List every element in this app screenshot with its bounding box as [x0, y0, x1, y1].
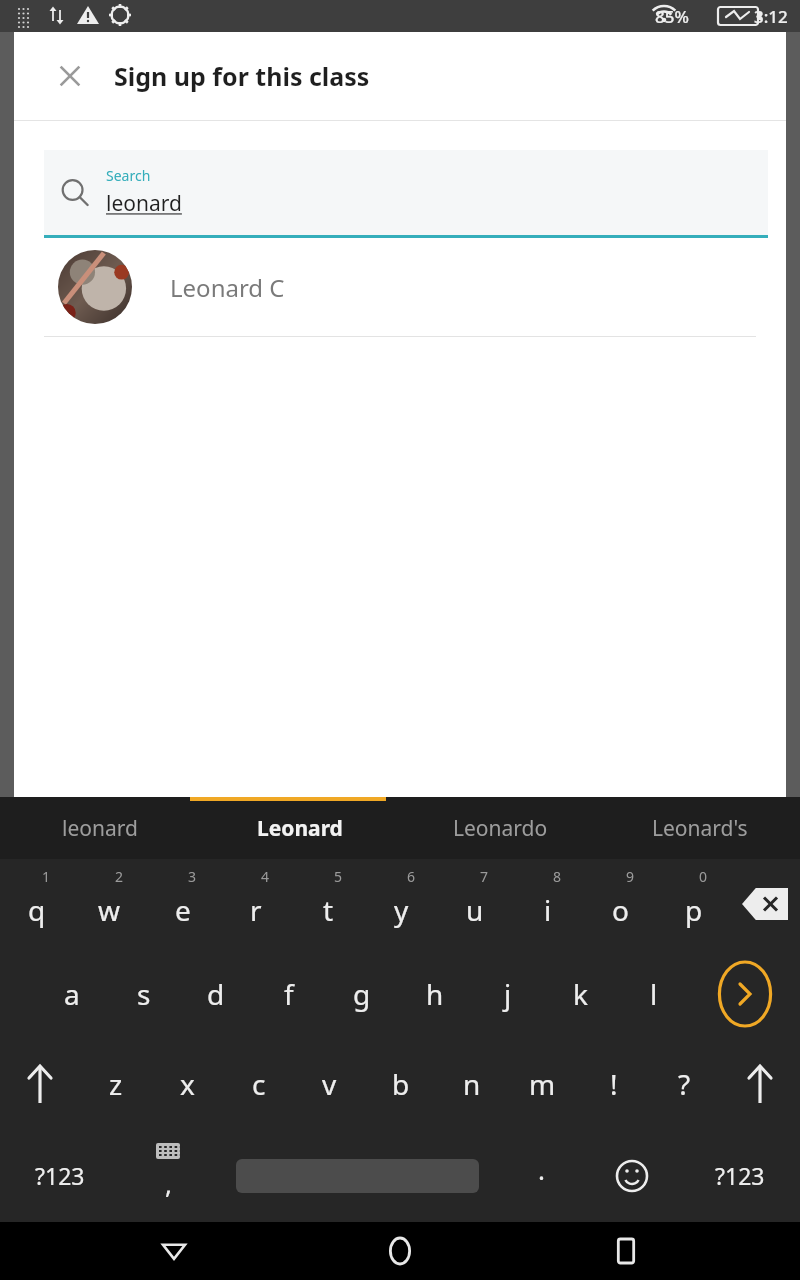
button[interactable]: ?123	[680, 1129, 800, 1222]
staticText: 3	[188, 867, 197, 886]
button[interactable]: f	[252, 949, 325, 1039]
button[interactable]: k	[544, 949, 617, 1039]
button[interactable]: v	[294, 1039, 365, 1129]
button[interactable]: Close	[46, 52, 94, 100]
staticText: Leonard C	[170, 271, 285, 304]
button[interactable]: 8	[511, 859, 584, 949]
staticText: g	[353, 975, 371, 1013]
staticText: 9	[626, 867, 635, 886]
staticText: Leonard	[257, 814, 343, 843]
staticText: n	[463, 1065, 481, 1103]
button[interactable]: 2	[73, 859, 146, 949]
button[interactable]: Back	[136, 1222, 212, 1280]
button[interactable]: j	[471, 949, 544, 1039]
button[interactable]: ?	[649, 1039, 720, 1129]
staticText: u	[466, 891, 484, 929]
staticText: s	[137, 975, 151, 1013]
staticText: e	[175, 891, 191, 929]
staticText: !	[610, 1065, 618, 1103]
staticText: p	[685, 891, 703, 929]
staticText: y	[394, 891, 409, 929]
button[interactable]: !	[578, 1039, 649, 1129]
staticText: 5	[334, 867, 343, 886]
staticText: b	[392, 1065, 410, 1103]
button[interactable]: leonard	[0, 797, 200, 859]
staticText: 1	[42, 867, 51, 886]
button[interactable]: 7	[438, 859, 511, 949]
button[interactable]: 1	[0, 859, 73, 949]
button[interactable]: a	[36, 949, 108, 1039]
staticText: k	[573, 975, 588, 1013]
staticText: a	[64, 975, 80, 1013]
staticText: 0	[699, 867, 708, 886]
button[interactable]: .	[498, 1129, 584, 1222]
button[interactable]: 0	[657, 859, 730, 949]
button[interactable]: Shift	[0, 1039, 80, 1129]
staticText: v	[322, 1065, 337, 1103]
staticText: 7	[480, 867, 489, 886]
staticText: Leonard's	[652, 814, 748, 843]
button[interactable]: d	[180, 949, 252, 1039]
button[interactable]: 9	[584, 859, 657, 949]
staticText: 4	[261, 867, 270, 886]
button[interactable]: ,	[120, 1129, 216, 1222]
button[interactable]: n	[436, 1039, 507, 1129]
staticText: Sign up for this class	[114, 59, 370, 93]
staticText: l	[650, 975, 658, 1013]
staticText: x	[180, 1065, 195, 1103]
staticText: ?	[678, 1065, 691, 1103]
staticText: 8	[553, 867, 562, 886]
staticText: i	[544, 891, 552, 929]
staticText: 2	[115, 867, 124, 886]
button[interactable]: Leonard	[200, 797, 400, 859]
button[interactable]: g	[325, 949, 398, 1039]
staticText: ?123	[715, 1160, 765, 1191]
button[interactable]: 6	[365, 859, 438, 949]
staticText: .	[538, 1152, 545, 1187]
button[interactable]: Backspace	[730, 859, 800, 949]
staticText: Search	[106, 166, 151, 185]
button[interactable]: b	[365, 1039, 436, 1129]
staticText: 85%	[655, 5, 689, 28]
button[interactable]: m	[507, 1039, 578, 1129]
button[interactable]: Enter	[690, 949, 800, 1039]
button[interactable]: 3	[146, 859, 219, 949]
button[interactable]: 4	[219, 859, 292, 949]
button[interactable]: Shift	[720, 1039, 800, 1129]
button[interactable]: c	[223, 1039, 294, 1129]
button[interactable]: Home	[362, 1222, 438, 1280]
button[interactable]: ?123	[0, 1129, 120, 1222]
button[interactable]: Search	[44, 150, 768, 235]
staticText: ,	[165, 1166, 172, 1201]
button[interactable]: 5	[292, 859, 365, 949]
staticText: leonard	[106, 189, 182, 218]
staticText: f	[284, 975, 294, 1013]
button[interactable]: Leonardo	[400, 797, 600, 859]
button[interactable]: x	[152, 1039, 223, 1129]
button[interactable]: z	[80, 1039, 152, 1129]
button[interactable]: Leonard's	[600, 797, 800, 859]
button[interactable]: Leonard C	[44, 238, 756, 336]
staticText: z	[109, 1065, 123, 1103]
staticText: t	[323, 891, 334, 929]
staticText: h	[426, 975, 444, 1013]
staticText: w	[98, 891, 121, 929]
staticText: 3:12	[754, 5, 788, 28]
staticText: 6	[407, 867, 416, 886]
staticText: j	[504, 975, 512, 1013]
staticText: Leonardo	[453, 814, 548, 843]
staticText: ?123	[35, 1160, 85, 1191]
staticText: d	[207, 975, 225, 1013]
button[interactable]: s	[108, 949, 180, 1039]
button[interactable]: Emoji	[584, 1129, 680, 1222]
button[interactable]: h	[398, 949, 471, 1039]
staticText: o	[612, 891, 629, 929]
staticText: leonard	[62, 814, 138, 843]
button[interactable]: l	[617, 949, 690, 1039]
staticText: m	[529, 1065, 556, 1103]
staticText: q	[28, 891, 46, 929]
staticText: c	[252, 1065, 266, 1103]
button[interactable]: Recents	[588, 1222, 664, 1280]
staticText: r	[250, 891, 262, 929]
